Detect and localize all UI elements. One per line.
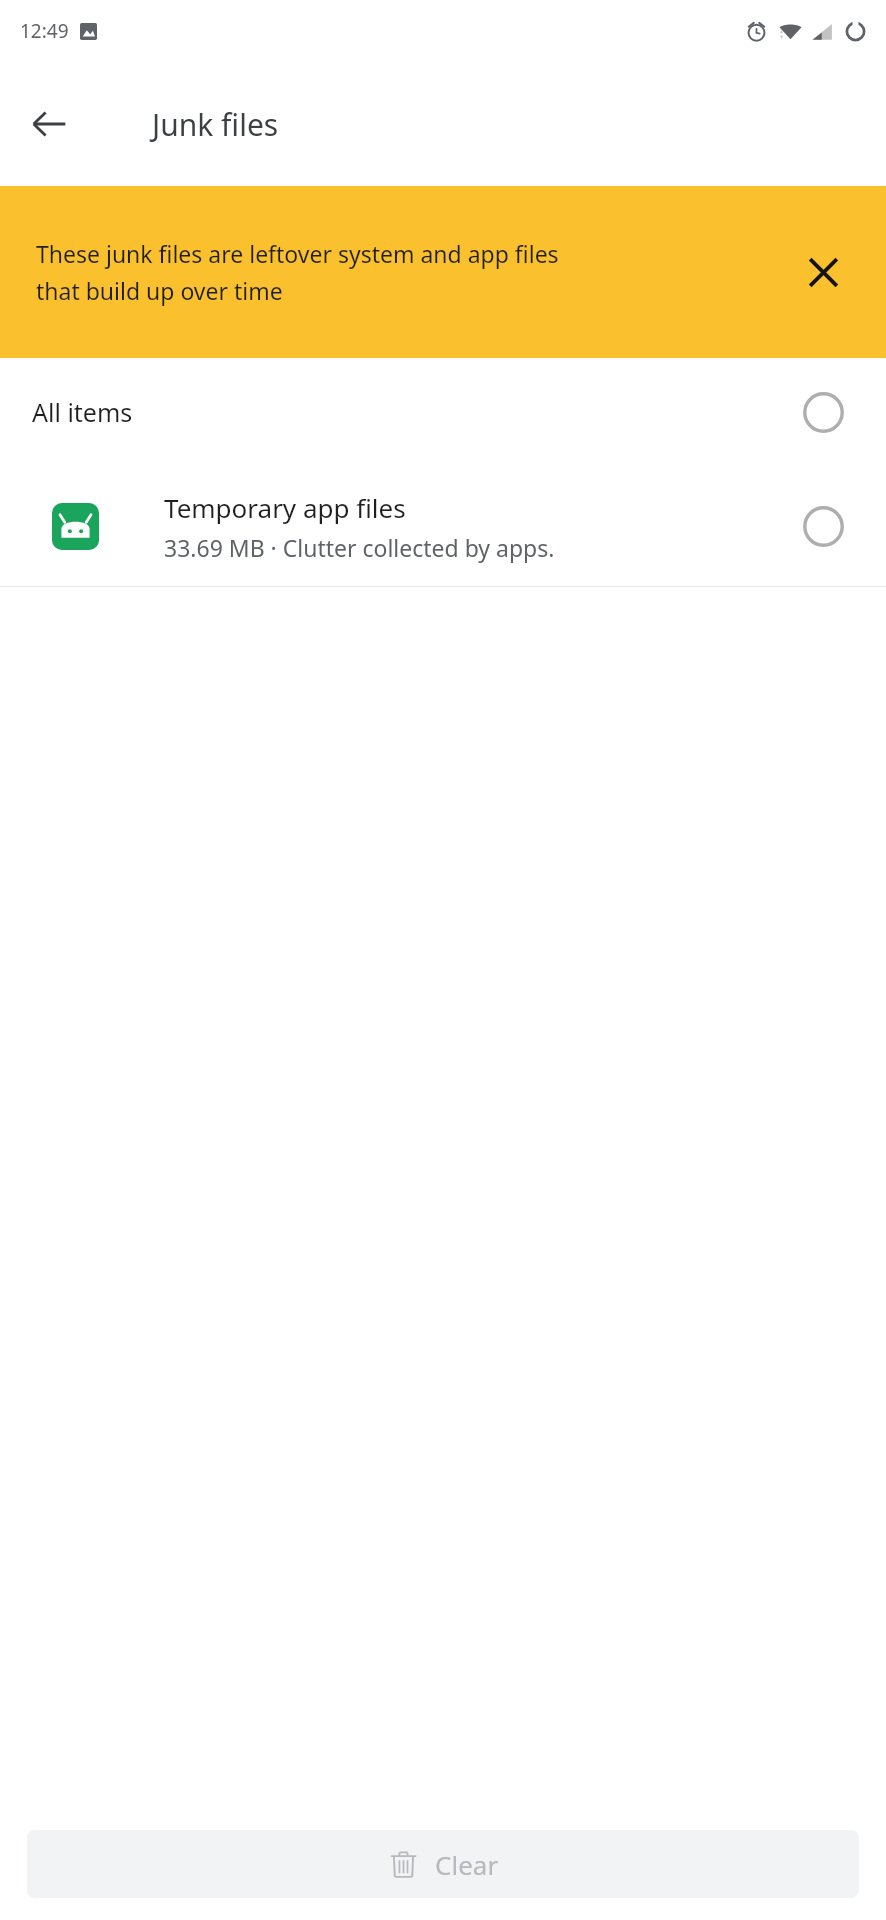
staticText: that build up over time [36, 275, 283, 306]
staticText: 12:49 [20, 18, 69, 44]
staticText: These junk files are leftover system and… [36, 238, 559, 269]
staticText: Temporary app files [164, 490, 406, 525]
button[interactable]: All items [0, 358, 886, 466]
staticText: All items [32, 395, 133, 429]
button[interactable]: Clear [27, 1830, 859, 1898]
staticText: Junk files [152, 104, 279, 145]
button[interactable]: Dismiss [792, 241, 854, 303]
staticText: Clear [435, 1847, 499, 1882]
button[interactable]: Back [16, 91, 82, 157]
staticText: 33.69 MB · Clutter collected by apps. [164, 532, 555, 563]
button[interactable]: Temporary app files [0, 466, 886, 586]
